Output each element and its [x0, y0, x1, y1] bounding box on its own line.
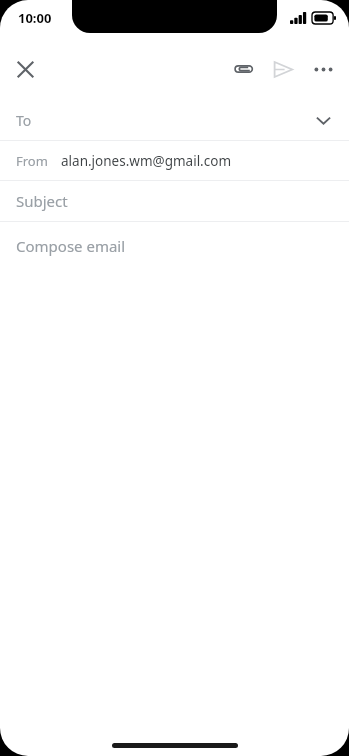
- button[interactable]: To: [0, 100, 349, 140]
- staticText: Subject: [16, 191, 68, 211]
- button[interactable]: Attach file: [223, 49, 263, 89]
- staticText: To: [16, 111, 32, 130]
- staticText: alan.jones.wm@gmail.com: [61, 152, 232, 170]
- staticText: Compose email: [16, 236, 126, 256]
- button[interactable]: Compose email: [0, 222, 349, 728]
- staticText: From: [16, 152, 48, 170]
- button[interactable]: More options: [303, 49, 343, 89]
- button[interactable]: Send: [263, 49, 303, 89]
- button[interactable]: Close: [5, 49, 45, 89]
- button[interactable]: From: [0, 141, 349, 180]
- button[interactable]: Expand recipients: [305, 102, 341, 138]
- staticText: 10:00: [18, 9, 52, 27]
- button[interactable]: Subject: [0, 181, 349, 221]
